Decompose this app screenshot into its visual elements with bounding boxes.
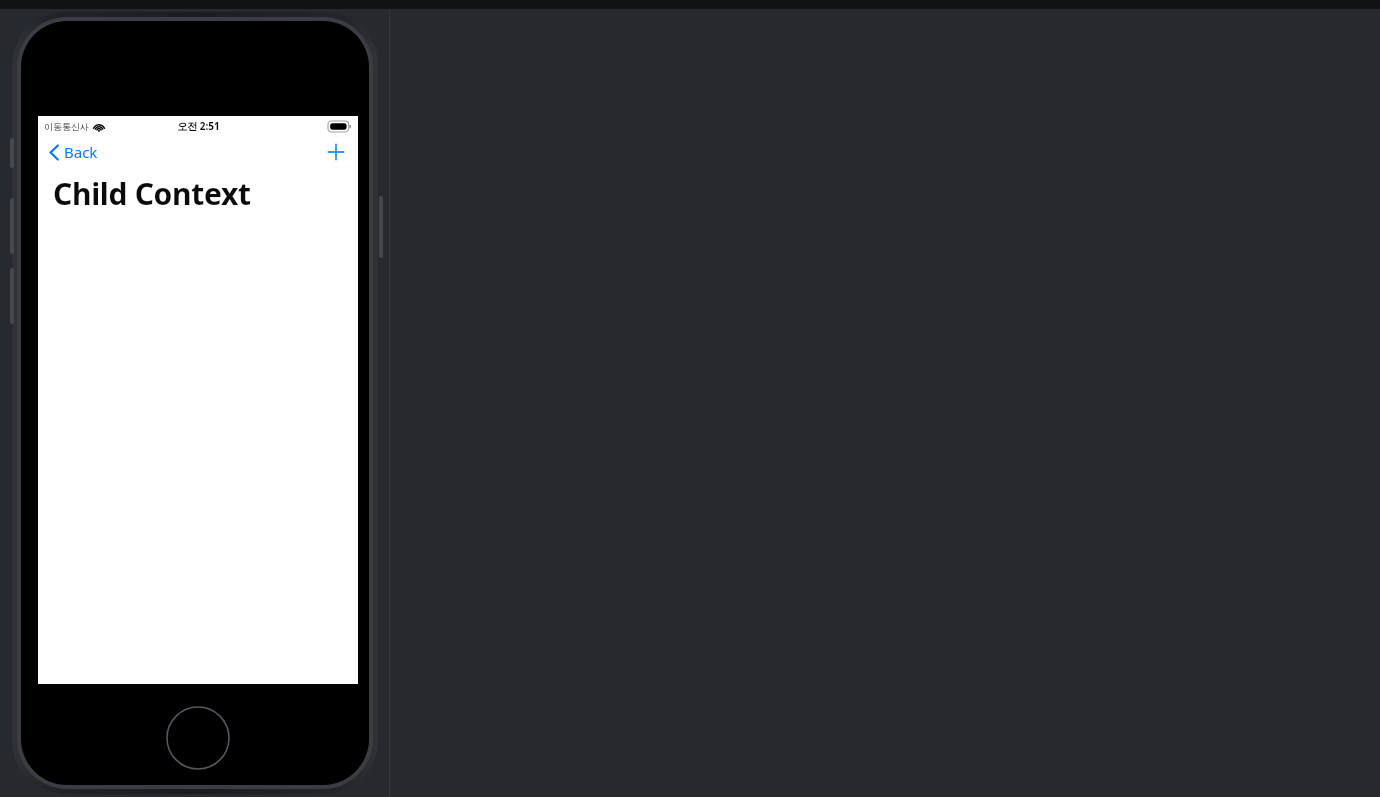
staticText: Child Context: [53, 173, 251, 214]
staticText: Back: [64, 142, 98, 162]
button[interactable]: Add: [324, 140, 348, 164]
other: Home: [166, 706, 230, 770]
staticText: 오전 2:51: [177, 119, 220, 133]
button[interactable]: Back: [47, 139, 100, 165]
staticText: 이동통신사: [44, 121, 89, 132]
